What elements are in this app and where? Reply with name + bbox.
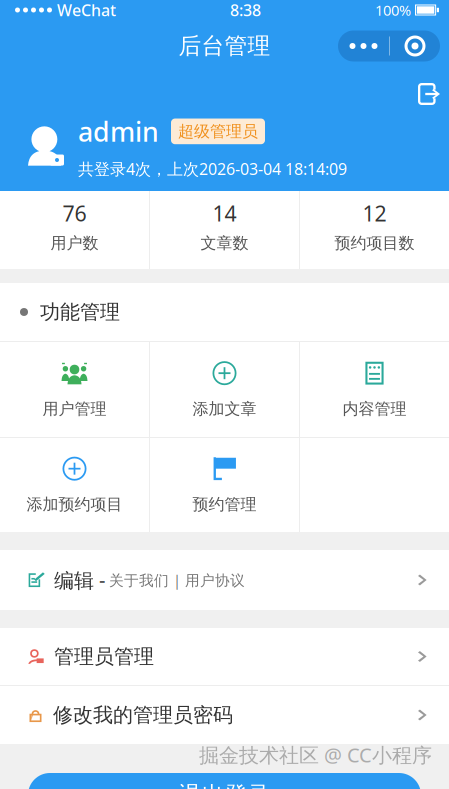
staticText: 14 xyxy=(212,199,236,227)
staticText: 12 xyxy=(362,199,386,227)
staticText: 编辑 - xyxy=(54,567,105,593)
staticText: 预约管理 xyxy=(192,495,256,514)
staticText: 超级管理员 xyxy=(178,121,258,141)
button[interactable]: 预约管理 xyxy=(150,438,299,532)
staticText: 8:38 xyxy=(230,0,261,21)
button[interactable]: 用户管理 xyxy=(0,342,149,437)
staticText: 预约项目数 xyxy=(334,233,414,253)
button[interactable]: 添加预约项目 xyxy=(0,438,149,532)
staticText: 管理员管理 xyxy=(54,644,154,669)
staticText: 修改我的管理员密码 xyxy=(53,703,233,727)
staticText: 100% xyxy=(375,0,411,20)
button[interactable]: 修改我的管理员密码 xyxy=(0,686,449,744)
staticText: 内容管理 xyxy=(342,399,406,419)
button[interactable]: 管理员管理 xyxy=(0,628,449,685)
button[interactable]: 内容管理 xyxy=(300,342,449,437)
staticText: WeChat xyxy=(57,0,116,21)
staticText: 76 xyxy=(62,199,86,227)
staticText: 用户管理 xyxy=(42,399,106,419)
staticText: 文章数 xyxy=(200,233,248,253)
button[interactable]: 添加文章 xyxy=(150,342,299,437)
staticText: 退出登录 xyxy=(178,781,270,789)
button[interactable]: 编辑 - xyxy=(0,550,449,610)
button[interactable]: 退出登录 xyxy=(28,773,421,789)
staticText: 共登录4次，上次2026-03-04 18:14:09 xyxy=(78,158,347,179)
staticText: 添加文章 xyxy=(192,399,256,419)
button[interactable]: 退出登录 xyxy=(407,75,449,113)
staticText: 关于我们 | 用户协议 xyxy=(109,570,245,590)
staticText: 添加预约项目 xyxy=(26,495,122,514)
staticText: 掘金技术社区 @ CC小程序 xyxy=(199,741,432,768)
staticText: 功能管理 xyxy=(40,300,120,324)
staticText: 用户数 xyxy=(50,233,98,253)
staticText: admin xyxy=(78,114,159,149)
staticText: 后台管理 xyxy=(178,32,270,60)
